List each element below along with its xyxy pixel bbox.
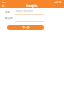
staticText: 请输入手机号码 [16,10,33,13]
staticText: 手机 [5,10,11,13]
button[interactable]: Back [0,4,5,8]
staticText: 9:41 [2,1,7,4]
staticText: 找回密码 [26,4,38,8]
staticText: 验证码 [5,16,13,19]
staticText: 下一步 [22,26,30,29]
button[interactable]: 下一步 [7,25,44,30]
